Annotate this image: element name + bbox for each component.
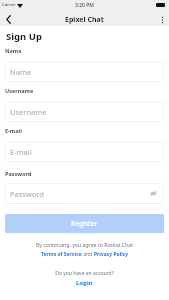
button[interactable]: Password bbox=[5, 183, 164, 204]
button[interactable]: Login bbox=[76, 279, 93, 287]
staticText: Username bbox=[5, 87, 34, 94]
staticText: Password bbox=[10, 189, 44, 199]
staticText: Carrier bbox=[2, 2, 16, 8]
button[interactable]: Back bbox=[0, 13, 16, 26]
button[interactable]: Name bbox=[5, 61, 164, 82]
staticText: Epixel Chat bbox=[65, 15, 104, 25]
button[interactable]: E-mail bbox=[5, 141, 164, 162]
button[interactable]: Show password bbox=[149, 189, 158, 198]
staticText: E-mail bbox=[10, 147, 32, 157]
staticText: 3:20 PM bbox=[75, 2, 94, 9]
button[interactable]: Terms of Service bbox=[41, 251, 82, 258]
staticText: Password bbox=[5, 170, 32, 177]
staticText: Sign Up bbox=[6, 30, 42, 43]
staticText: E-mail bbox=[5, 127, 22, 134]
button[interactable]: More options bbox=[155, 13, 169, 26]
staticText: Username bbox=[10, 107, 47, 117]
staticText: By continuing, you agree to Rocket.Chat bbox=[0, 241, 169, 248]
staticText: and bbox=[82, 251, 94, 258]
staticText: Do you have an account? bbox=[0, 270, 169, 277]
staticText: Name bbox=[5, 47, 22, 54]
button[interactable]: Register bbox=[5, 214, 164, 233]
staticText: Name bbox=[10, 67, 32, 77]
button[interactable]: Privacy Policy bbox=[94, 251, 129, 258]
button[interactable]: Username bbox=[5, 101, 164, 122]
staticText: Register bbox=[71, 219, 98, 228]
